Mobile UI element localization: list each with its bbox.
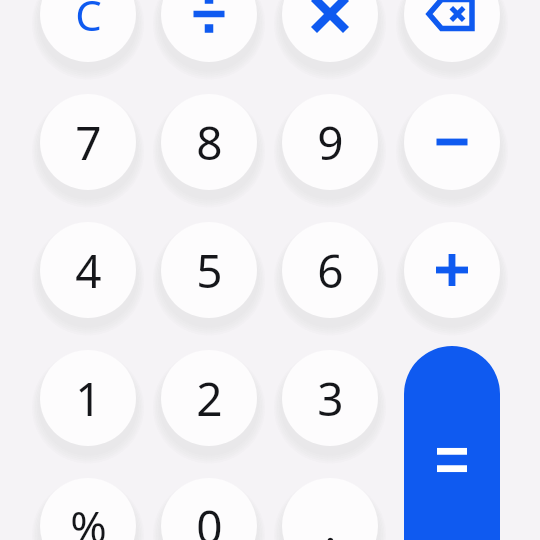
staticText: 0 [196,495,223,540]
staticText: . [324,495,337,540]
staticText: 8 [196,111,223,174]
button[interactable]: 3 [282,350,378,446]
button[interactable]: % [40,478,136,540]
button[interactable]: 4 [40,222,136,318]
staticText: 2 [196,367,223,430]
button[interactable]: . [282,478,378,540]
button[interactable]: 2 [161,350,257,446]
staticText: 6 [317,239,344,302]
button[interactable]: Multiply [282,0,378,62]
button[interactable]: Divide [161,0,257,62]
button[interactable]: 5 [161,222,257,318]
button[interactable]: 9 [282,94,378,190]
button[interactable]: Equals [404,346,500,540]
staticText: 4 [75,239,102,302]
button[interactable]: 1 [40,350,136,446]
staticText: % [70,496,107,540]
staticText: C [75,0,102,43]
button[interactable]: 0 [161,478,257,540]
button[interactable]: Plus [404,222,500,318]
staticText: 9 [317,111,344,174]
button[interactable]: Minus [404,94,500,190]
button[interactable]: 8 [161,94,257,190]
staticText: 3 [317,367,344,430]
button[interactable]: C [40,0,136,62]
button[interactable]: 7 [40,94,136,190]
button[interactable]: Backspace [404,0,500,62]
staticText: 5 [196,239,223,302]
staticText: 1 [75,367,102,430]
staticText: 7 [75,111,102,174]
button[interactable]: 6 [282,222,378,318]
